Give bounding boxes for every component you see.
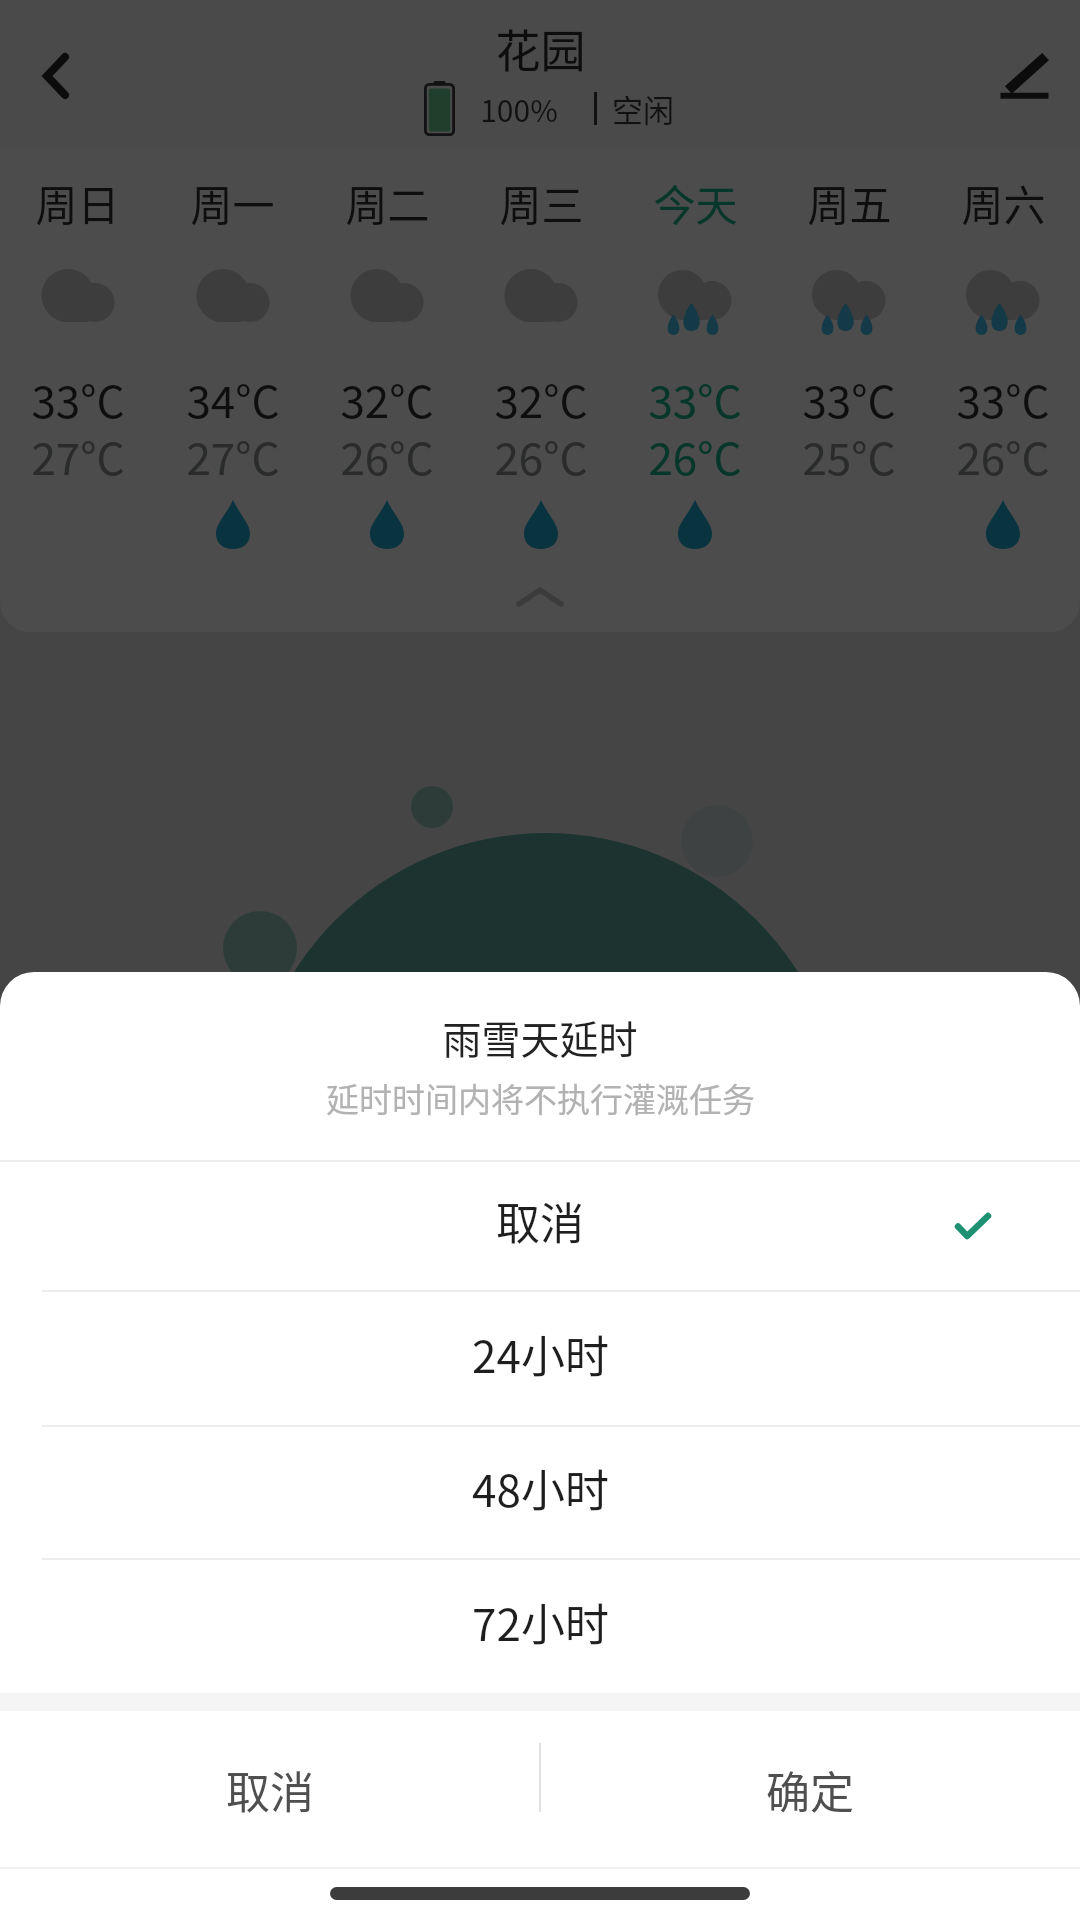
button[interactable]: 取消: [0, 1162, 1080, 1290]
button[interactable]: Collapse: [485, 570, 595, 624]
staticText: 100%: [480, 87, 558, 130]
staticText: 周日: [35, 172, 120, 233]
button[interactable]: 取消: [0, 1711, 540, 1869]
staticText: 32°C: [494, 367, 588, 431]
staticText: 取消: [496, 1189, 584, 1253]
staticText: 周二: [345, 172, 430, 233]
button[interactable]: 48小时: [0, 1427, 1080, 1558]
staticText: 今天: [653, 172, 738, 233]
button[interactable]: 确定: [540, 1711, 1080, 1869]
staticText: 26°C: [956, 424, 1050, 488]
staticText: 33°C: [648, 367, 742, 431]
button[interactable]: Back: [8, 28, 104, 124]
staticText: 周六: [961, 172, 1046, 233]
button[interactable]: 72小时: [0, 1560, 1080, 1693]
staticText: 33°C: [31, 367, 125, 431]
staticText: 花园: [495, 16, 586, 81]
staticText: 25°C: [802, 424, 896, 488]
staticText: 48小时: [472, 1456, 609, 1520]
staticText: 32°C: [340, 367, 434, 431]
staticText: 延时时间内将不执行灌溉任务: [326, 1074, 755, 1122]
staticText: 雨雪天延时: [442, 1009, 638, 1065]
button[interactable]: 24小时: [0, 1292, 1080, 1425]
staticText: 取消: [226, 1758, 314, 1822]
staticText: 周一: [190, 172, 275, 233]
staticText: 周五: [807, 172, 892, 233]
staticText: 33°C: [956, 367, 1050, 431]
staticText: 空闲: [612, 86, 674, 131]
staticText: 26°C: [648, 424, 742, 488]
staticText: 24小时: [472, 1322, 609, 1386]
staticText: 26°C: [340, 424, 434, 488]
staticText: 72小时: [472, 1590, 609, 1654]
staticText: 26°C: [494, 424, 588, 488]
staticText: 27°C: [186, 424, 280, 488]
staticText: 34°C: [186, 367, 280, 431]
button[interactable]: Edit: [976, 28, 1072, 124]
staticText: 周三: [499, 172, 584, 233]
staticText: 27°C: [31, 424, 125, 488]
staticText: 确定: [766, 1758, 854, 1822]
staticText: 33°C: [802, 367, 896, 431]
